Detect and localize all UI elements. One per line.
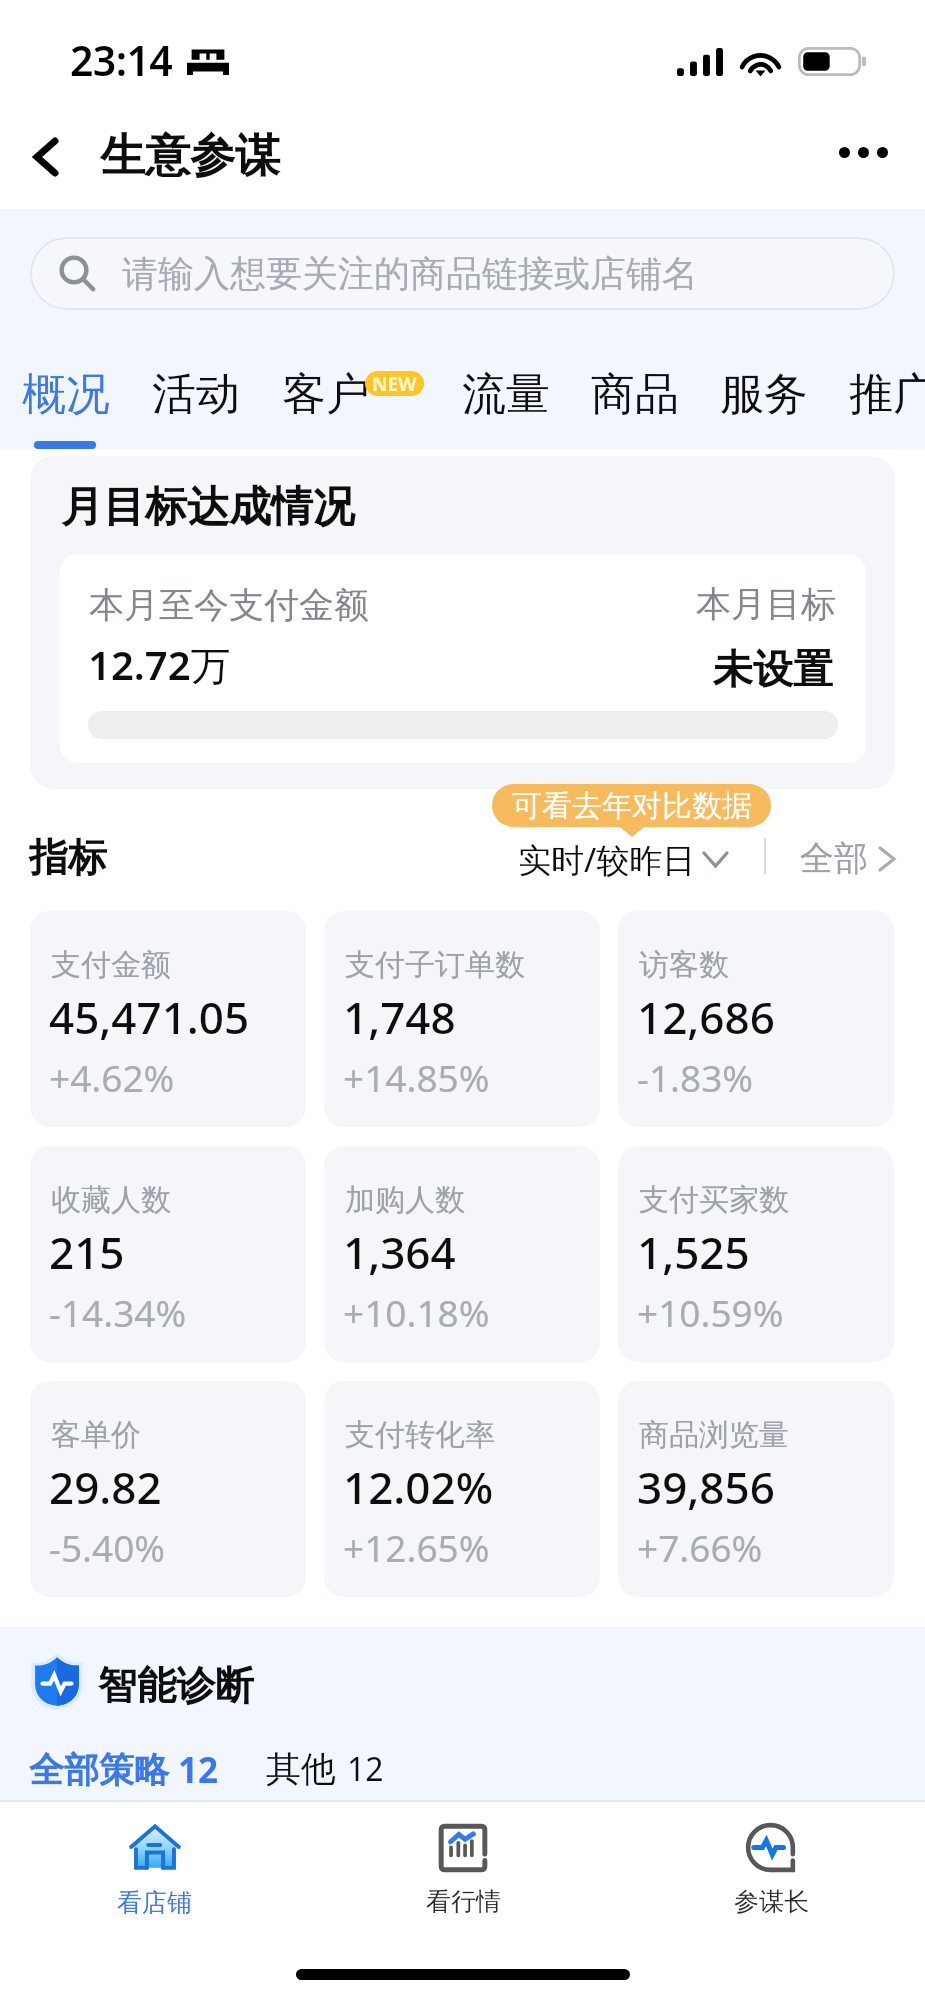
staticText: 支付转化率 bbox=[345, 1416, 495, 1454]
button[interactable]: More options bbox=[829, 118, 897, 186]
staticText: 支付金额 bbox=[51, 946, 171, 984]
staticText: 未设置 bbox=[713, 644, 833, 694]
staticText: 实时/较昨日 bbox=[518, 837, 696, 882]
staticText: 支付子订单数 bbox=[345, 946, 525, 984]
button[interactable]: 活动 bbox=[152, 357, 240, 431]
button[interactable]: 月目标达成情况 bbox=[30, 456, 895, 789]
staticText: 支付买家数 bbox=[639, 1181, 789, 1219]
staticText: 商品 bbox=[591, 367, 679, 422]
staticText: 参谋长 bbox=[734, 1886, 809, 1917]
staticText: 概况 bbox=[22, 367, 110, 422]
staticText: -14.34% bbox=[49, 1287, 187, 1337]
button[interactable]: 看行情 bbox=[309, 1802, 617, 1940]
staticText: 请输入想要关注的商品链接或店铺名 bbox=[122, 251, 698, 296]
staticText: 12.72万 bbox=[88, 637, 231, 692]
staticText: 全部策略 bbox=[29, 1748, 169, 1792]
button[interactable]: 访客数 bbox=[618, 911, 894, 1127]
staticText: 流量 bbox=[462, 367, 550, 422]
button[interactable]: 商品 bbox=[591, 357, 679, 431]
staticText: NEW bbox=[372, 371, 417, 396]
button[interactable]: Back bbox=[12, 123, 80, 191]
staticText: 生意参谋 bbox=[100, 128, 280, 185]
staticText: 活动 bbox=[152, 367, 240, 422]
button[interactable]: 全部策略 bbox=[29, 1746, 219, 1794]
staticText: 看店铺 bbox=[117, 1887, 192, 1918]
staticText: 收藏人数 bbox=[51, 1181, 171, 1219]
staticText: 看行情 bbox=[426, 1886, 501, 1917]
button[interactable]: 概况 bbox=[22, 357, 110, 431]
button[interactable]: 支付转化率 bbox=[324, 1381, 600, 1597]
staticText: -1.83% bbox=[637, 1052, 754, 1102]
button[interactable]: 请输入想要关注的商品链接或店铺名 bbox=[30, 237, 895, 310]
staticText: +12.65% bbox=[343, 1522, 490, 1572]
staticText: 29.82 bbox=[49, 1457, 162, 1517]
staticText: 23:14 bbox=[70, 32, 173, 88]
staticText: 加购人数 bbox=[345, 1181, 465, 1219]
staticText: 服务 bbox=[720, 367, 808, 422]
staticText: 45,471.05 bbox=[49, 987, 250, 1047]
staticText: 商品浏览量 bbox=[639, 1416, 789, 1454]
staticText: 推广 bbox=[849, 367, 925, 422]
staticText: 1,364 bbox=[343, 1222, 456, 1282]
staticText: -5.40% bbox=[49, 1522, 166, 1572]
button[interactable]: 看店铺 bbox=[0, 1802, 309, 1940]
staticText: 访客数 bbox=[639, 946, 729, 984]
button[interactable]: 推广 bbox=[849, 357, 925, 431]
staticText: 12,686 bbox=[637, 987, 775, 1047]
button[interactable]: 客户 bbox=[282, 357, 370, 431]
button[interactable]: 收藏人数 bbox=[30, 1146, 306, 1362]
staticText: 39,856 bbox=[637, 1457, 775, 1517]
staticText: 12 bbox=[347, 1747, 384, 1791]
staticText: 指标 bbox=[29, 833, 107, 882]
button[interactable]: 加购人数 bbox=[324, 1146, 600, 1362]
staticText: 客单价 bbox=[51, 1416, 141, 1454]
staticText: 1,748 bbox=[343, 987, 456, 1047]
button[interactable]: 支付买家数 bbox=[618, 1146, 894, 1362]
staticText: 月目标达成情况 bbox=[61, 481, 355, 534]
staticText: 12.02% bbox=[343, 1457, 494, 1517]
staticText: +10.18% bbox=[343, 1287, 490, 1337]
staticText: 12 bbox=[178, 1746, 219, 1794]
staticText: +10.59% bbox=[637, 1287, 784, 1337]
button[interactable]: 商品浏览量 bbox=[618, 1381, 894, 1597]
staticText: 可看去年对比数据 bbox=[512, 787, 752, 825]
staticText: 本月至今支付金额 bbox=[89, 583, 369, 627]
button[interactable]: 参谋长 bbox=[617, 1802, 925, 1940]
button[interactable]: 流量 bbox=[462, 357, 550, 431]
staticText: 其他 bbox=[266, 1747, 336, 1791]
button[interactable]: 服务 bbox=[720, 357, 808, 431]
button[interactable]: 实时/较昨日 bbox=[518, 837, 727, 882]
staticText: 客户 bbox=[282, 367, 370, 422]
staticText: 全部 bbox=[800, 837, 868, 880]
staticText: +14.85% bbox=[343, 1052, 490, 1102]
staticText: +4.62% bbox=[49, 1052, 175, 1102]
staticText: 智能诊断 bbox=[98, 1661, 254, 1710]
staticText: +7.66% bbox=[637, 1522, 763, 1572]
staticText: 本月目标 bbox=[696, 582, 836, 626]
button[interactable]: 支付子订单数 bbox=[324, 911, 600, 1127]
button[interactable]: 其他 bbox=[266, 1747, 384, 1791]
button[interactable]: 客单价 bbox=[30, 1381, 306, 1597]
staticText: 215 bbox=[49, 1222, 125, 1282]
button[interactable]: 全部 bbox=[800, 837, 894, 880]
staticText: 1,525 bbox=[637, 1222, 750, 1282]
button[interactable]: 支付金额 bbox=[30, 911, 306, 1127]
